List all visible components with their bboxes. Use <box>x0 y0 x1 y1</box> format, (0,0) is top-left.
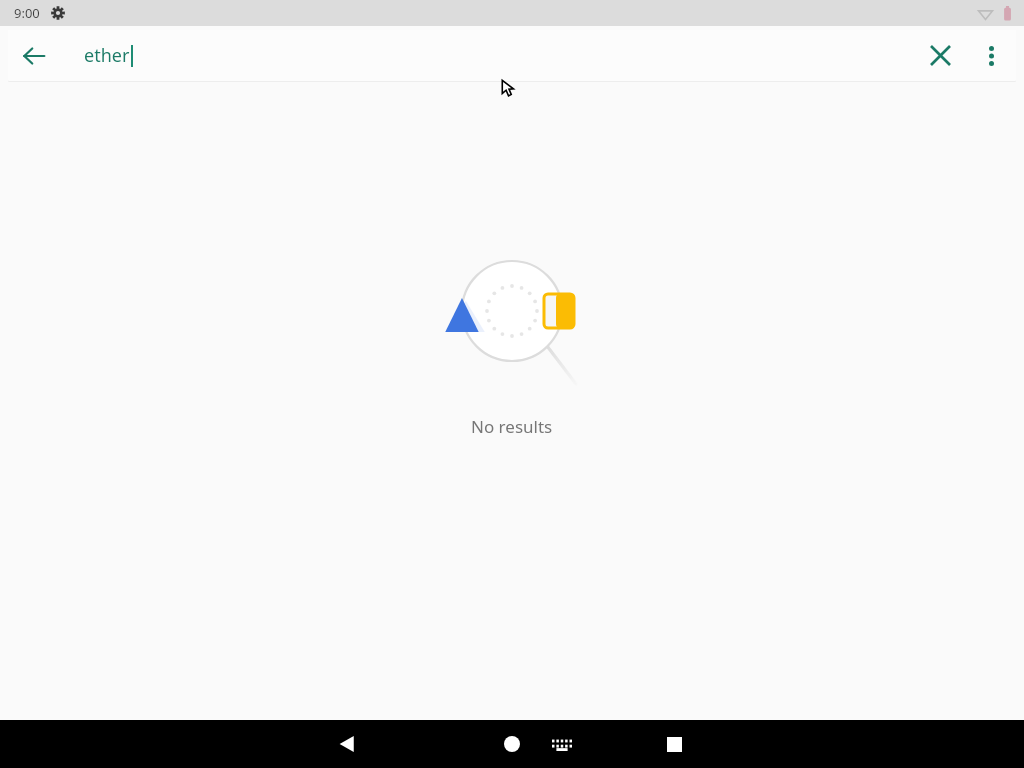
staticText: No results <box>471 415 553 438</box>
button[interactable]: Recent apps <box>652 722 696 766</box>
staticText: ether <box>84 43 130 68</box>
staticText: 9:00 <box>14 4 40 22</box>
button[interactable]: Home <box>490 722 534 766</box>
button[interactable]: Back <box>325 722 369 766</box>
button[interactable]: Clear search <box>914 30 966 81</box>
button[interactable]: More options <box>966 31 1016 81</box>
button[interactable]: Back <box>8 30 60 81</box>
button[interactable]: Keyboard <box>540 722 584 766</box>
